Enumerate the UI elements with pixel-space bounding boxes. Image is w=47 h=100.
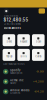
button[interactable]: Spotify	[0, 67, 47, 77]
staticText: Good morning	[4, 15, 18, 17]
staticText: Request	[20, 40, 28, 43]
staticText: LAST TRANSACTIONS	[3, 63, 24, 66]
staticText: Whole Foods	[10, 89, 29, 92]
button[interactable]: Send	[3, 34, 15, 46]
staticText: Salary	[10, 82, 16, 85]
staticText: Subscription	[10, 72, 22, 75]
staticText: Acme Inc	[10, 79, 24, 82]
button[interactable]: Cards	[32, 49, 45, 61]
staticText: Send	[6, 40, 11, 43]
button[interactable]: Top up	[3, 49, 15, 61]
staticText: Quick actions	[4, 27, 21, 30]
staticText: Cards	[35, 55, 41, 58]
button[interactable]: Acme Inc	[0, 77, 47, 87]
staticText: Top up	[6, 55, 12, 58]
staticText: $12,480.55	[4, 17, 29, 22]
staticText: +4,200	[33, 80, 44, 83]
staticText: -64.20	[34, 90, 44, 93]
button[interactable]: Profile	[4, 8, 9, 14]
staticText: Bills	[21, 55, 27, 58]
staticText: Scan	[36, 40, 41, 43]
staticText: -9.99	[36, 70, 44, 73]
button[interactable]: Whole Foods	[0, 87, 47, 97]
button[interactable]: Notifications	[39, 8, 45, 14]
button[interactable]: Bills	[17, 49, 30, 61]
button[interactable]: Request	[17, 34, 30, 46]
staticText: Groceries	[10, 92, 20, 95]
button[interactable]: Scan	[32, 34, 45, 46]
staticText: +2.4% this week	[4, 23, 21, 25]
staticText: Spotify	[10, 69, 20, 72]
